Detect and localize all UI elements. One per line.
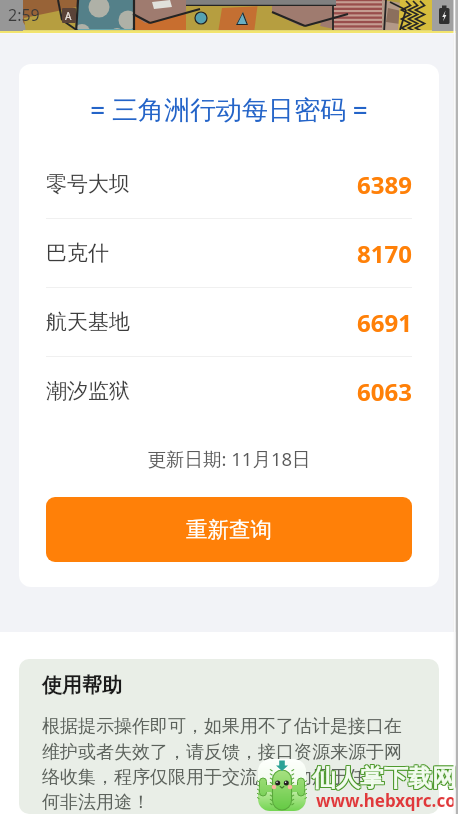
button[interactable]: 巴克什 (46, 219, 412, 287)
staticText: 巴克什 (46, 240, 109, 266)
staticText: 零号大坝 (46, 171, 130, 197)
staticText: 仙人掌下载网 (311, 763, 455, 793)
staticText: 仙人掌下载网 (313, 764, 457, 794)
staticText: 潮汐监狱 (46, 378, 130, 404)
staticText: 6063 (357, 375, 412, 408)
staticText: 6691 (357, 306, 412, 339)
staticText: A (65, 9, 72, 23)
staticText: 仙人掌下载网 (312, 764, 456, 794)
button[interactable]: 潮汐监狱 (46, 357, 412, 425)
staticText: 仙人掌下载网 (311, 764, 455, 794)
staticText: 仙人掌下载网 (313, 762, 457, 792)
staticText: 仙人掌下载网 (312, 762, 456, 792)
button[interactable]: 航天基地 (46, 288, 412, 356)
button[interactable]: 零号大坝 (46, 150, 412, 218)
staticText: 8170 (357, 237, 412, 270)
staticText: www.hebxqrc.com (316, 789, 458, 812)
staticText: = 三角洲行动每日密码 = (19, 91, 439, 127)
button[interactable]: 重新查询 (46, 497, 412, 562)
staticText: 航天基地 (46, 309, 130, 335)
staticText: 仙人掌下载网 (313, 763, 457, 793)
staticText: 重新查询 (186, 516, 272, 543)
staticText: 2:59 (8, 4, 40, 26)
staticText: 仙人掌下载网 (311, 762, 455, 792)
staticText: 使用帮助 (42, 673, 122, 698)
staticText: 根据提示操作即可，如果用不了估计是接口在 维护或者失效了，请反馈，接口资源来源于… (42, 715, 402, 813)
staticText: 6389 (357, 168, 412, 201)
staticText: 更新日期: 11月18日 (19, 446, 439, 471)
staticText: 仙人掌下载网 (312, 763, 456, 793)
